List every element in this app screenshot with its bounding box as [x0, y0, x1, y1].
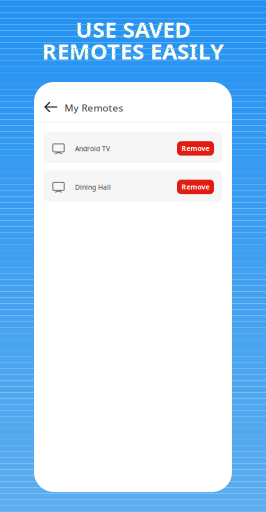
staticText: Remove	[181, 144, 209, 153]
button[interactable]: Remove	[177, 180, 214, 194]
staticText: USE SAVED	[75, 14, 190, 44]
staticText: Dining Hall	[75, 183, 111, 192]
staticText: My Remotes	[64, 101, 123, 114]
staticText: Android TV	[75, 144, 110, 153]
staticText: REMOTES EASILY	[42, 36, 224, 66]
button[interactable]: Back	[40, 96, 62, 118]
staticText: Remove	[181, 182, 209, 192]
button[interactable]: Remove	[177, 141, 214, 156]
